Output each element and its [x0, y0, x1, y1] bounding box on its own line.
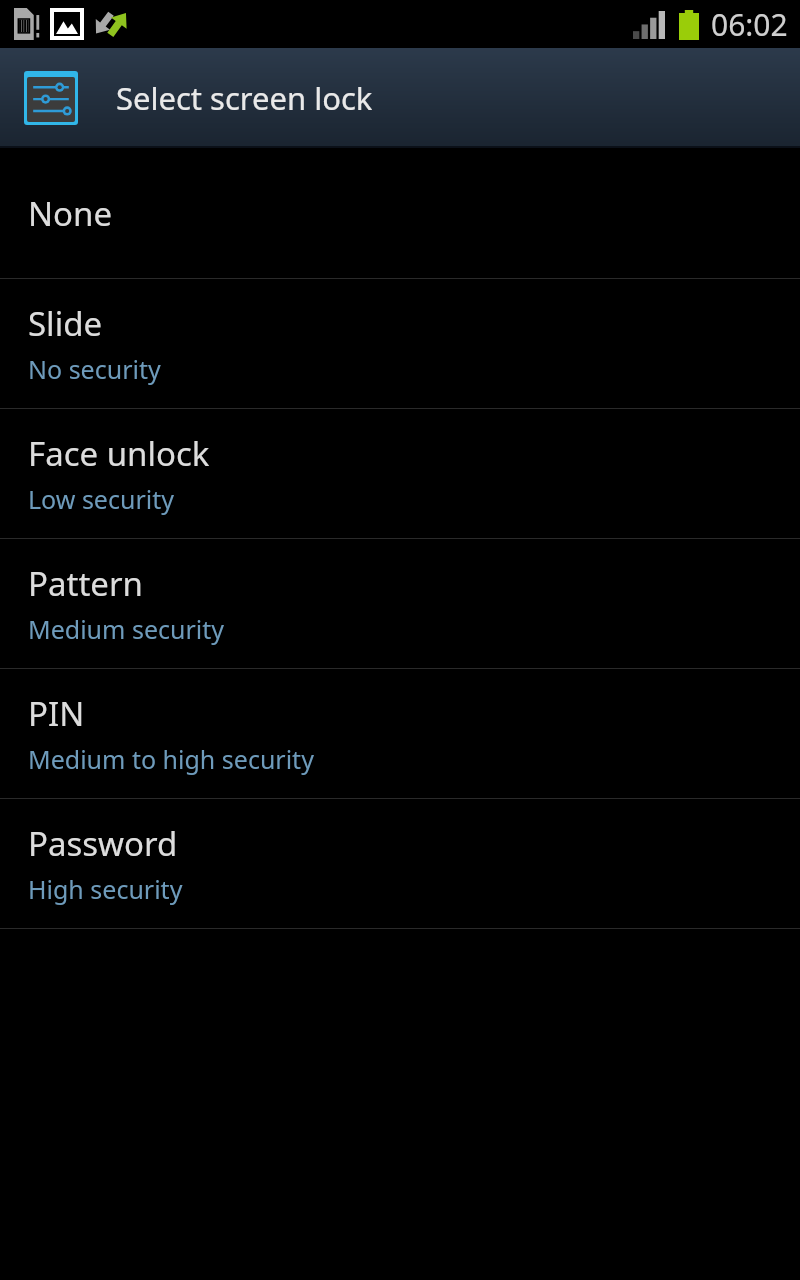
staticText: Low security [28, 482, 174, 516]
staticText: Slide [28, 301, 103, 346]
staticText: None [28, 191, 113, 236]
button[interactable]: Face unlock [0, 409, 800, 538]
staticText: Face unlock [28, 431, 210, 476]
staticText: Medium to high security [28, 742, 314, 776]
staticText: Select screen lock [116, 77, 373, 119]
button[interactable]: None [0, 148, 800, 278]
staticText: No security [28, 352, 161, 386]
button[interactable]: PIN [0, 669, 800, 798]
staticText: 06:02 [711, 4, 788, 45]
staticText: PIN [28, 691, 85, 736]
staticText: High security [28, 872, 183, 906]
staticText: Password [28, 821, 178, 866]
button[interactable]: Slide [0, 279, 800, 408]
button[interactable]: Password [0, 799, 800, 928]
button[interactable]: Pattern [0, 539, 800, 668]
staticText: Medium security [28, 612, 225, 646]
staticText: Pattern [28, 561, 143, 606]
